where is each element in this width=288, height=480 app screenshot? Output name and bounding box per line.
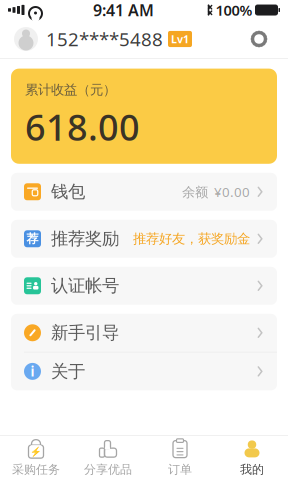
staticText: 推荐奖励: [51, 228, 119, 249]
staticText: 分享优品: [84, 462, 132, 477]
staticText: 152****5488: [46, 27, 163, 51]
staticText: 余额 ¥0.00: [182, 183, 250, 201]
staticText: 累计收益（元）: [25, 82, 116, 98]
button[interactable]: ⚡: [0, 436, 72, 480]
button[interactable]: 认证帐号: [11, 267, 277, 305]
staticText: 认证帐号: [51, 275, 119, 296]
staticText: 荐: [26, 231, 38, 246]
staticText: 新手引导: [51, 322, 119, 343]
button[interactable]: 订单: [144, 436, 216, 480]
button[interactable]: 我的: [216, 436, 288, 480]
staticText: 采购任务: [12, 462, 60, 477]
button[interactable]: i: [11, 352, 277, 390]
button[interactable]: Settings: [244, 24, 274, 54]
staticText: 订单: [168, 462, 192, 477]
staticText: ⚡: [30, 446, 42, 457]
staticText: 100%: [215, 0, 252, 20]
staticText: Lv1: [171, 32, 189, 46]
staticText: 我的: [240, 462, 264, 477]
staticText: i: [30, 362, 34, 380]
staticText: 618.00: [25, 103, 140, 151]
staticText: 9:41 AM: [93, 0, 154, 21]
staticText: 钱包: [51, 181, 85, 202]
button[interactable]: 钱包: [11, 173, 277, 211]
button[interactable]: 新手引导: [11, 314, 277, 352]
staticText: 关于: [51, 361, 85, 382]
button[interactable]: 分享优品: [72, 436, 144, 480]
staticText: 推荐好友，获奖励金: [133, 231, 250, 247]
button[interactable]: 荐: [11, 220, 277, 258]
